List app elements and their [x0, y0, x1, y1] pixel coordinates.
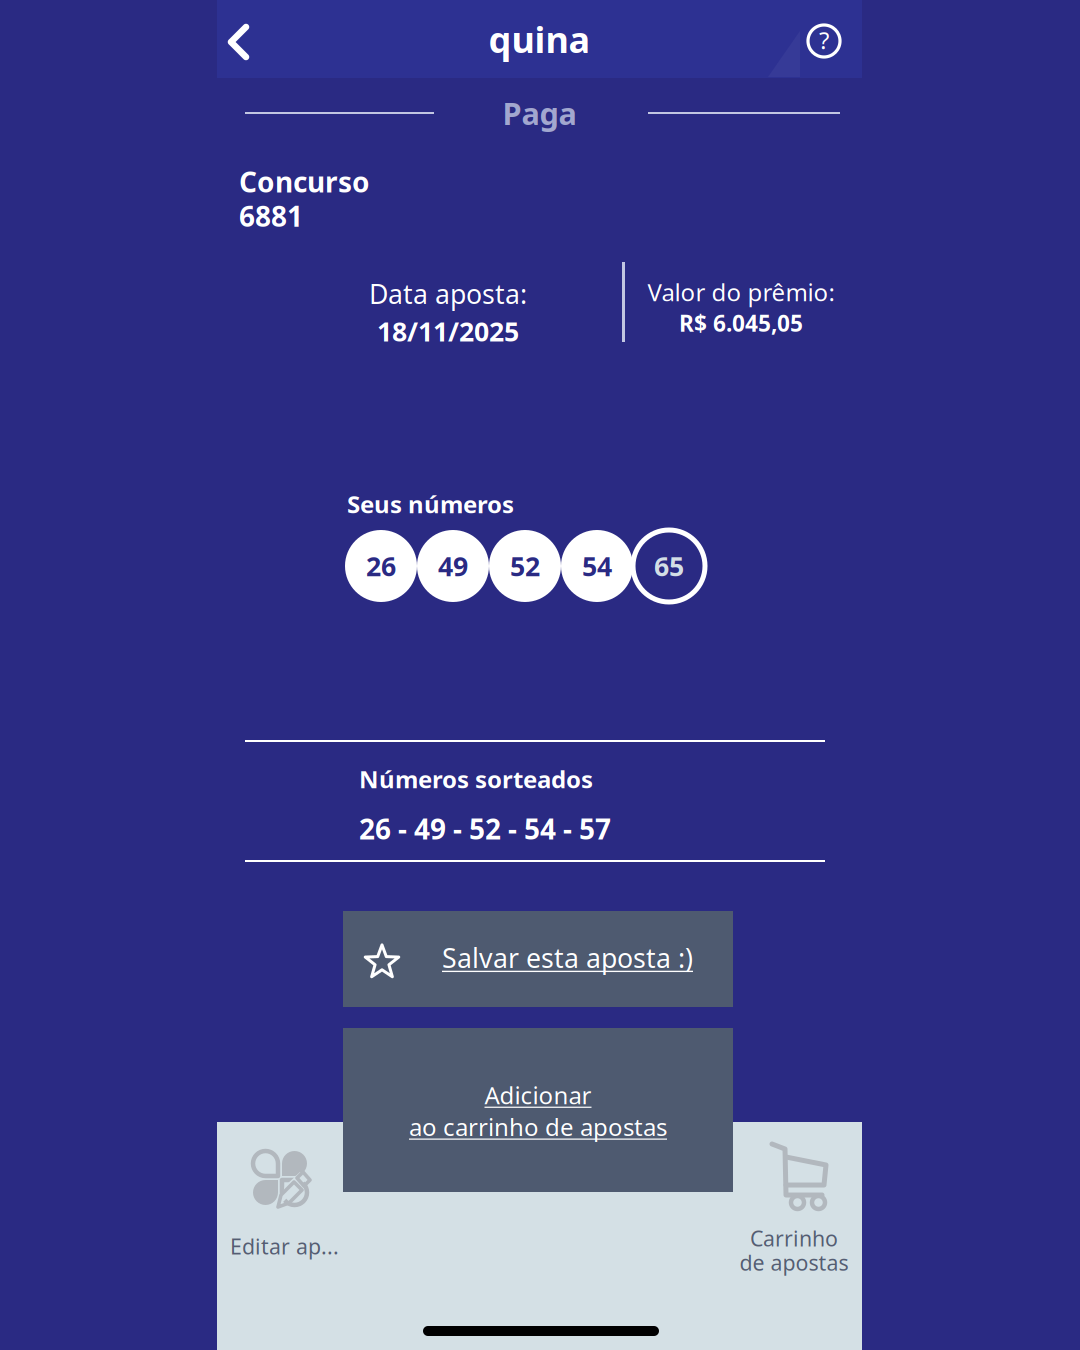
staticText: 52: [510, 548, 540, 584]
button[interactable]: Salvar esta aposta :): [343, 911, 733, 1007]
staticText: Paga: [502, 93, 576, 133]
button[interactable]: Adicionar: [343, 1028, 733, 1192]
staticText: Salvar esta aposta :): [442, 940, 693, 975]
staticText: Números sorteados: [359, 763, 593, 795]
staticText: 26 - 49 - 52 - 54 - 57: [359, 810, 611, 847]
button[interactable]: Help: [785, 2, 863, 80]
staticText: Seus números: [347, 488, 514, 520]
staticText: Valor do prêmio:: [647, 276, 834, 308]
staticText: Adicionar: [484, 1079, 591, 1111]
button[interactable]: Back: [217, 0, 303, 78]
staticText: Concurso: [239, 163, 370, 200]
staticText: 18/11/2025: [377, 313, 519, 349]
button[interactable]: Carrinho: [726, 1122, 862, 1282]
staticText: 49: [438, 548, 468, 584]
staticText: 65: [654, 548, 684, 584]
staticText: Carrinho: [750, 1224, 838, 1252]
staticText: Editar ap...: [230, 1232, 339, 1260]
staticText: 54: [582, 548, 612, 584]
staticText: Data aposta:: [369, 276, 527, 311]
staticText: ao carrinho de apostas: [409, 1111, 667, 1143]
staticText: ?: [819, 24, 829, 56]
staticText: de apostas: [739, 1248, 848, 1277]
staticText: 26: [366, 548, 396, 584]
staticText: R$ 6.045,05: [679, 308, 803, 338]
staticText: 6881: [239, 197, 303, 234]
button[interactable]: Editar ap...: [228, 1122, 368, 1282]
staticText: quina: [488, 15, 590, 63]
